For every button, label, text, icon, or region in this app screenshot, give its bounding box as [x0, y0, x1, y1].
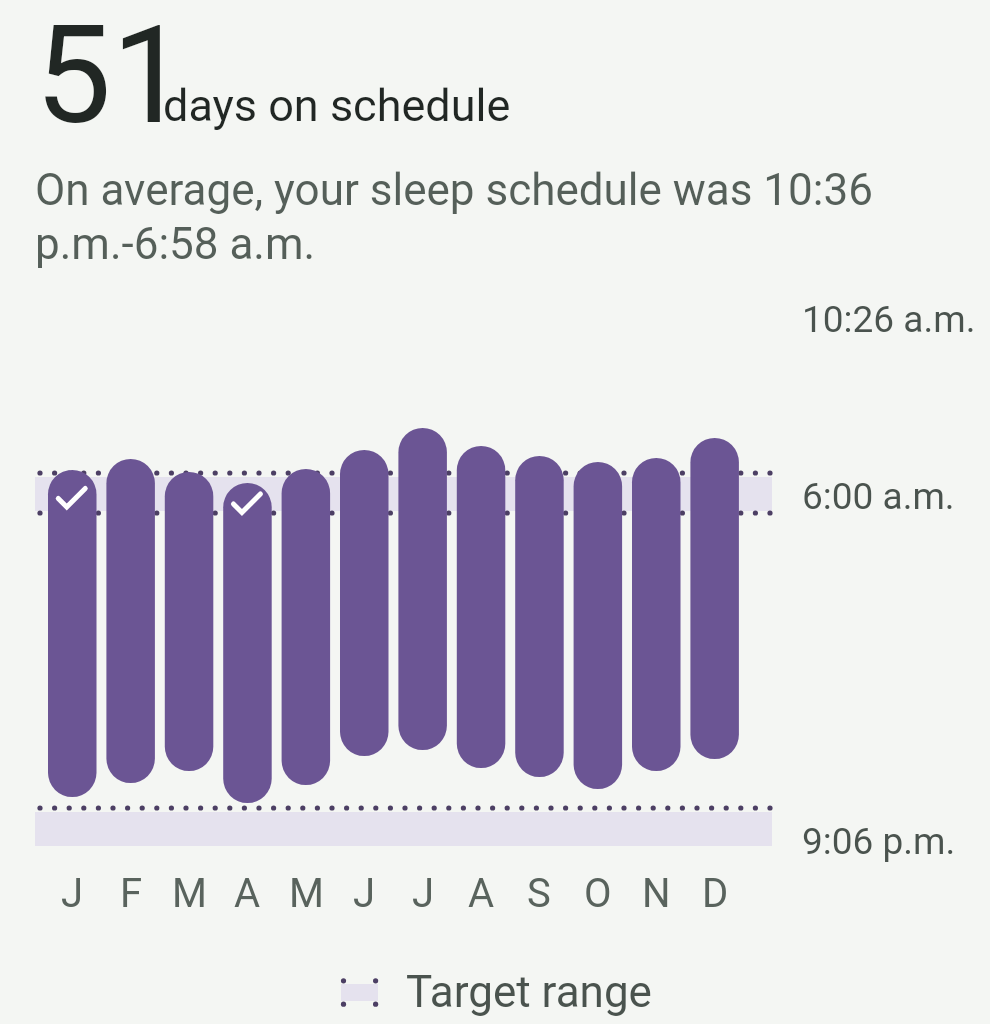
staticText: days on schedule [163, 79, 511, 132]
staticText: O [584, 870, 612, 917]
staticText: J [61, 870, 84, 917]
staticText: 6:00 a.m. [802, 475, 955, 518]
staticText: S [527, 870, 551, 917]
staticText: p.m.-6:58 a.m. [35, 218, 316, 270]
button[interactable] [335, 965, 655, 1017]
staticText: F [120, 870, 143, 917]
staticText: J [412, 870, 435, 917]
staticText: N [642, 870, 671, 917]
staticText: M [172, 870, 207, 917]
staticText: 9:06 p.m. [802, 820, 956, 863]
staticText: 51 [35, 0, 188, 155]
staticText: D [702, 870, 729, 917]
staticText: Target range [406, 966, 652, 1018]
staticText: A [468, 870, 495, 917]
staticText: 10:26 a.m. [802, 298, 976, 341]
staticText: A [234, 870, 261, 917]
staticText: On average, your sleep schedule was 10:3… [35, 164, 873, 216]
staticText: M [289, 870, 324, 917]
staticText: J [353, 870, 376, 917]
